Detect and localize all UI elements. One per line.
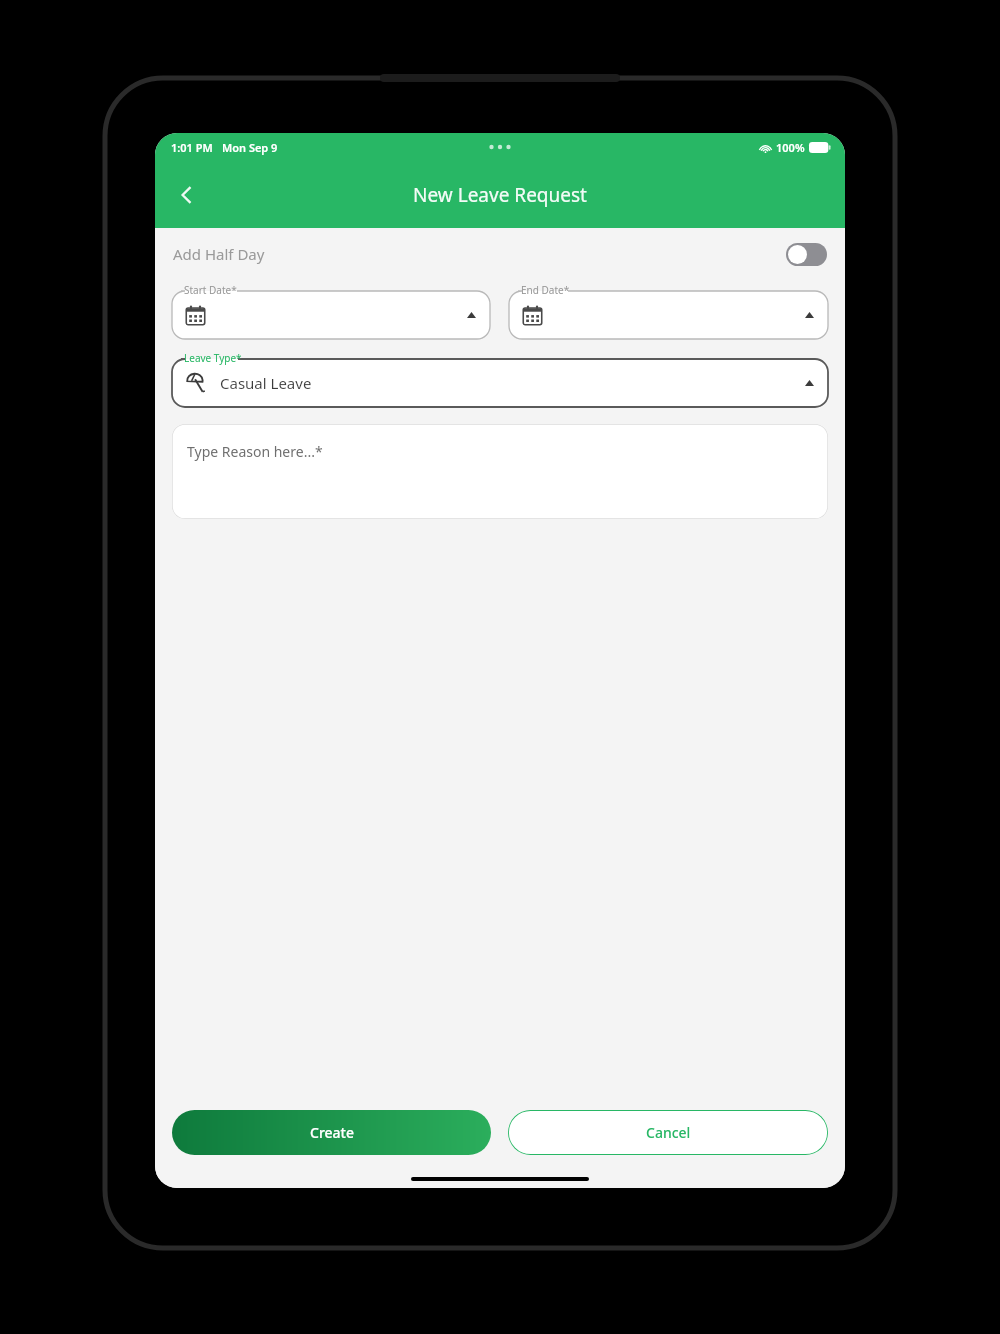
staticText: Create: [310, 1123, 354, 1142]
staticText: Leave Type*: [184, 351, 242, 365]
button[interactable]: Back: [163, 171, 211, 219]
staticText: End Date*: [521, 283, 570, 297]
staticText: Casual Leave: [220, 373, 312, 393]
button[interactable]: Type Reason here...*: [172, 424, 828, 519]
staticText: Mon Sep 9: [222, 140, 278, 155]
staticText: Add Half Day: [173, 244, 265, 264]
staticText: Cancel: [646, 1123, 691, 1142]
staticText: Start Date*: [184, 283, 237, 297]
staticText: Type Reason here...*: [187, 442, 323, 461]
button[interactable]: Leave Type*: [172, 350, 828, 407]
button[interactable]: End Date*: [509, 282, 828, 339]
staticText: 100%: [776, 140, 805, 155]
button[interactable]: Start Date*: [172, 282, 490, 339]
staticText: 1:01 PM: [171, 140, 213, 155]
button[interactable]: Add Half Day toggle: [786, 243, 827, 266]
button[interactable]: Add Half Day: [155, 228, 845, 280]
button[interactable]: Create: [172, 1110, 491, 1155]
staticText: New Leave Request: [413, 182, 587, 208]
button[interactable]: Cancel: [508, 1110, 828, 1155]
